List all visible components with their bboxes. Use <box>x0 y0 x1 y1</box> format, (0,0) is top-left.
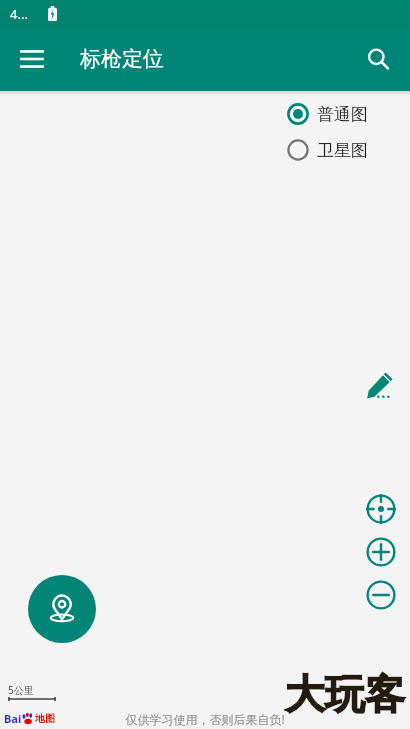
staticText: 标枪定位 <box>80 46 164 72</box>
staticText: 卫星图 <box>317 140 368 161</box>
button[interactable]: Zoom out <box>366 580 396 610</box>
staticText: 4... <box>10 5 28 23</box>
staticText: 普通图 <box>317 104 368 125</box>
button[interactable]: Zoom in <box>366 537 396 567</box>
staticText: 地图 <box>35 712 55 725</box>
button[interactable]: 普通图 <box>285 100 370 128</box>
staticText: 5公里 <box>8 683 34 697</box>
staticText: 大玩客 <box>285 669 405 719</box>
staticText: Bai <box>4 711 22 726</box>
button[interactable]: Open navigation menu <box>10 37 54 81</box>
button[interactable]: 卫星图 <box>285 136 370 164</box>
button[interactable]: Search <box>356 37 400 81</box>
button[interactable]: Edit track <box>362 368 398 404</box>
button[interactable]: My location <box>366 494 396 524</box>
button[interactable]: Locate me <box>28 575 96 643</box>
staticText: 仅供学习使用，否则后果自负! <box>125 711 285 727</box>
